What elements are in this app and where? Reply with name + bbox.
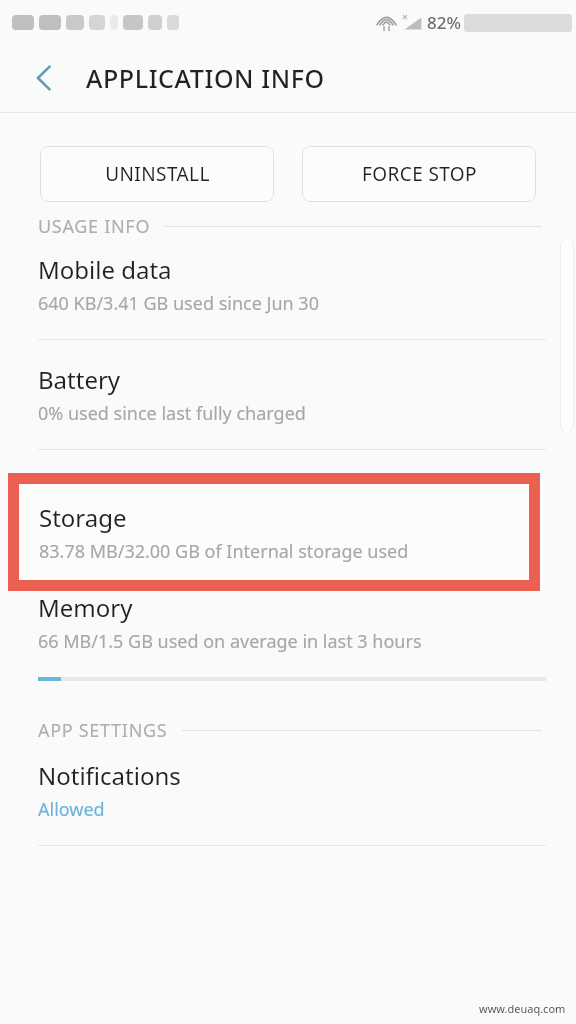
staticText: Notifications (38, 759, 181, 792)
staticText: APPLICATION INFO (86, 61, 325, 95)
staticText: 640 KB/3.41 GB used since Jun 30 (38, 291, 319, 316)
staticText: UNINSTALL (105, 161, 210, 187)
button[interactable]: Memory (0, 591, 576, 704)
staticText: Mobile data (38, 253, 172, 286)
button[interactable]: UNINSTALL (40, 146, 274, 202)
staticText: Battery (38, 363, 121, 396)
button[interactable]: Back (22, 56, 66, 100)
staticText: www.deuaq.com (479, 1001, 566, 1016)
staticText: 0% used since last fully charged (38, 401, 306, 426)
button[interactable]: Storage (8, 473, 540, 591)
staticText: Allowed (38, 797, 105, 822)
staticText: USAGE INFO (38, 214, 151, 239)
button[interactable]: Battery (0, 363, 576, 473)
staticText: 83.78 MB/32.00 GB of Internal storage us… (39, 539, 409, 564)
staticText: FORCE STOP (362, 161, 477, 187)
button[interactable]: FORCE STOP (302, 146, 536, 202)
staticText: Storage (39, 501, 127, 534)
button[interactable]: Mobile data (0, 253, 576, 363)
staticText: Memory (38, 591, 133, 624)
staticText: 82% (427, 11, 461, 34)
staticText: 66 MB/1.5 GB used on average in last 3 h… (38, 629, 422, 654)
staticText: APP SETTINGS (38, 718, 168, 743)
button[interactable]: Notifications (0, 759, 576, 869)
